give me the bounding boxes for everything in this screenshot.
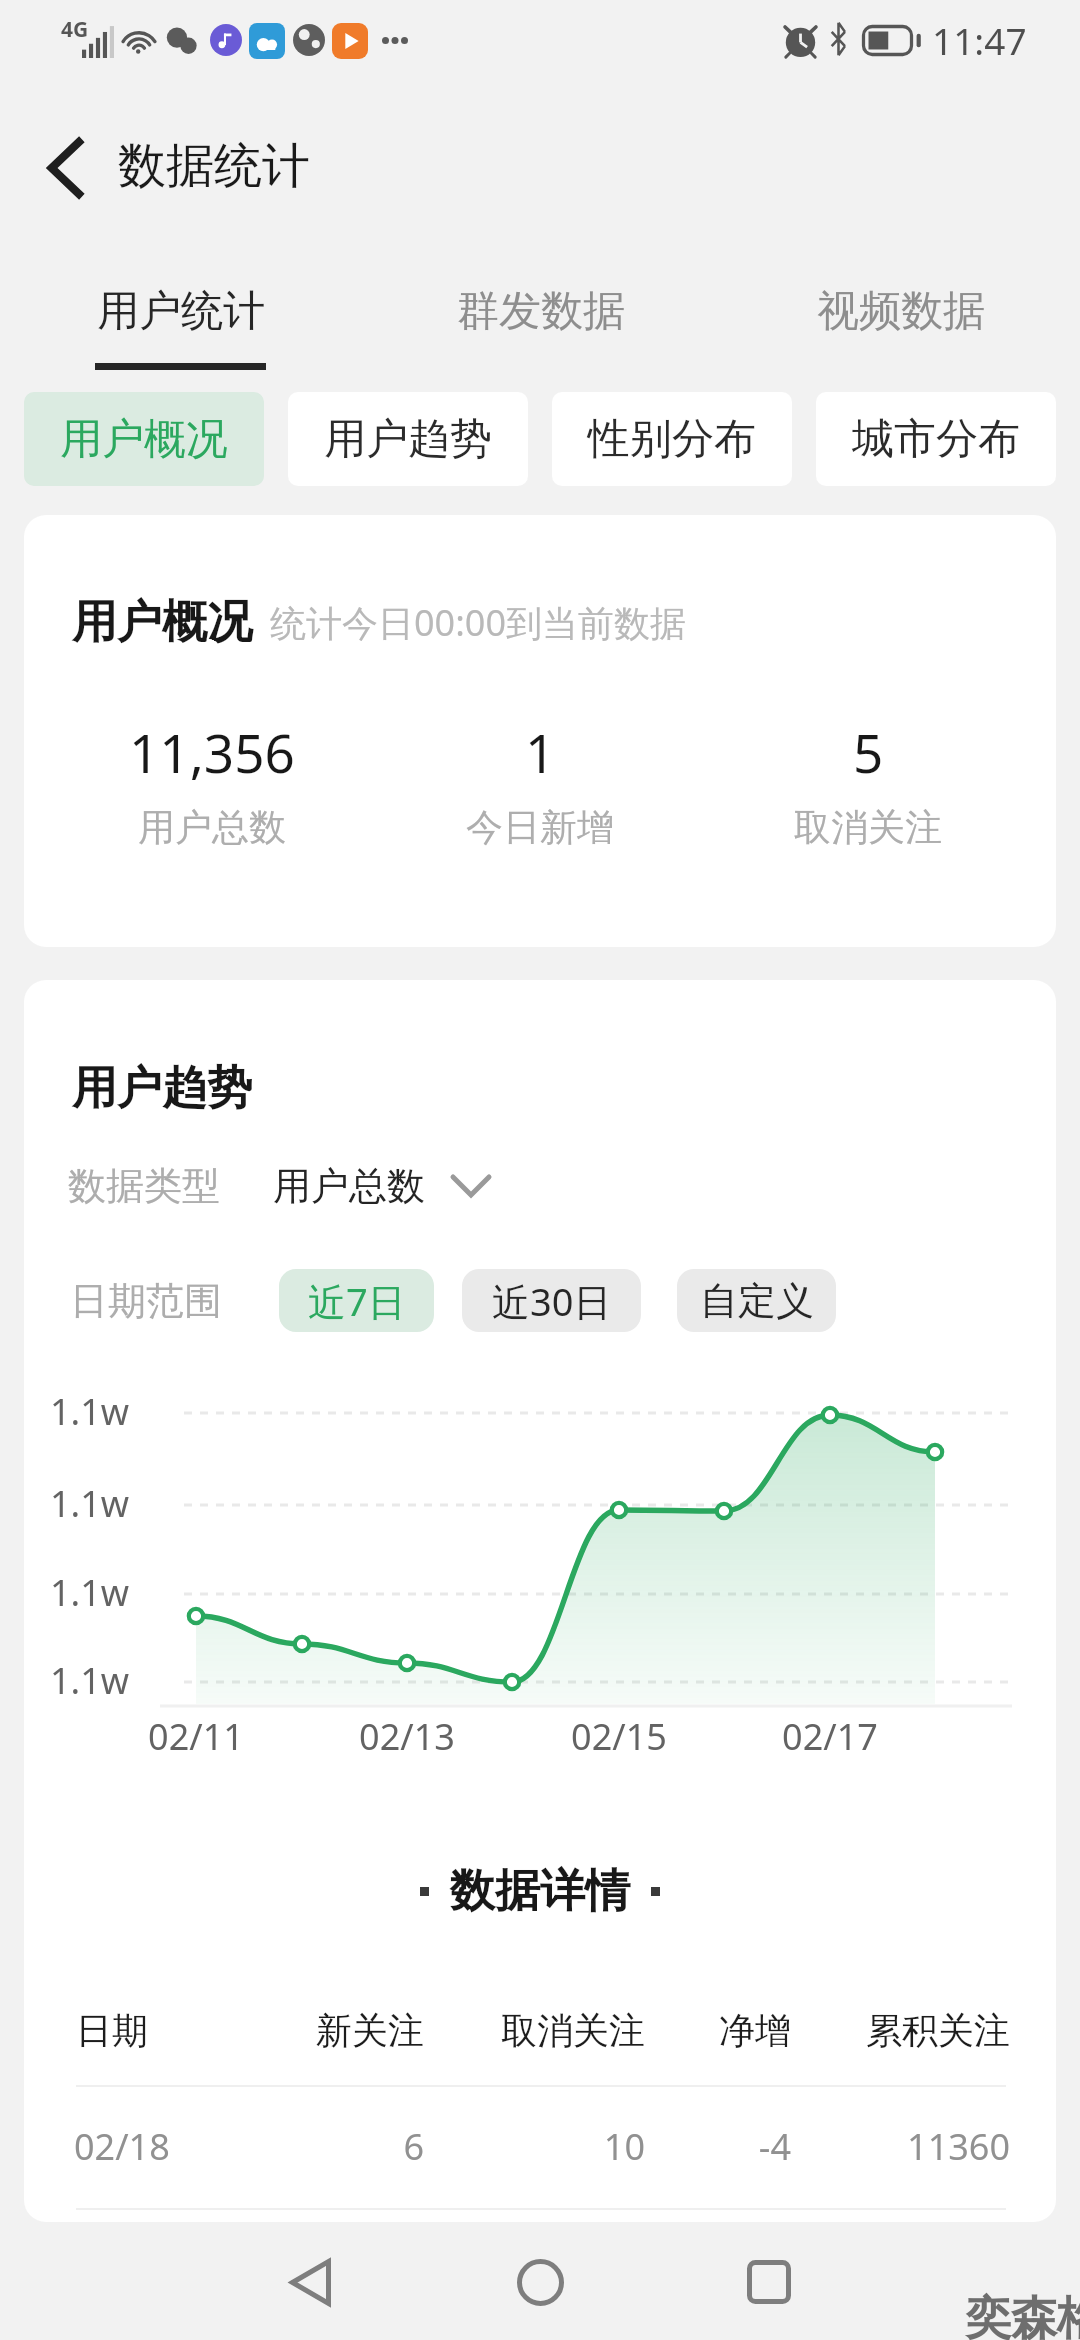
staticText: 取消关注 [794, 804, 942, 851]
staticText: 用户趋势 [324, 413, 492, 466]
staticText: 近7日 [308, 1275, 406, 1327]
staticText: 1.1w [50, 1656, 130, 1705]
staticText: 02/18 [74, 2122, 170, 2171]
staticText: 自定义 [700, 1277, 814, 1325]
staticText: 02/15 [549, 1712, 689, 1761]
button[interactable]: Home [490, 2232, 590, 2332]
staticText: 用户总数 [138, 804, 286, 851]
button[interactable]: 用户总数 [273, 1162, 491, 1210]
button[interactable]: 用户统计 [0, 244, 360, 384]
staticText: 城市分布 [852, 413, 1020, 466]
staticText: 1 [525, 716, 556, 788]
staticText: 用户总数 [273, 1162, 425, 1210]
staticText: 日期范围 [70, 1277, 222, 1325]
staticText: 视频数据 [817, 285, 985, 338]
staticText: 群发数据 [457, 285, 625, 338]
staticText: 数据详情 [450, 1863, 630, 1920]
staticText: 今日新增 [466, 804, 614, 851]
staticText: 奕森格 [965, 2290, 1080, 2340]
button[interactable]: 性别分布 [552, 392, 792, 486]
staticText: 1.1w [50, 1387, 130, 1436]
button[interactable]: Back [26, 128, 106, 208]
button[interactable]: 自定义 [677, 1269, 836, 1332]
staticText: 02/17 [760, 1712, 900, 1761]
staticText: 4G [61, 15, 89, 44]
staticText: 1.1w [50, 1479, 130, 1528]
staticText: 用户概况 [72, 594, 252, 651]
staticText: 日期 [76, 2008, 148, 2053]
staticText: -4 [531, 2122, 791, 2171]
staticText: 数据类型 [68, 1162, 220, 1210]
staticText: 新关注 [164, 2008, 424, 2053]
staticText: 10 [385, 2122, 645, 2171]
staticText: 取消关注 [385, 2008, 645, 2053]
staticText: 性别分布 [588, 413, 756, 466]
button[interactable]: 用户概况 [24, 392, 264, 486]
button[interactable]: 用户趋势 [288, 392, 528, 486]
button[interactable]: 城市分布 [816, 392, 1056, 486]
staticText: 02/13 [337, 1712, 477, 1761]
staticText: 用户统计 [97, 285, 265, 338]
button[interactable]: Recents [719, 2232, 819, 2332]
staticText: 用户概况 [60, 413, 228, 466]
staticText: 数据统计 [118, 136, 310, 196]
staticText: 11:47 [932, 15, 1027, 65]
button[interactable]: 视频数据 [720, 244, 1080, 384]
staticText: 1.1w [50, 1568, 130, 1617]
button[interactable]: 近30日 [462, 1269, 641, 1332]
staticText: 11360 [750, 2122, 1010, 2171]
staticText: 累积关注 [750, 2008, 1010, 2053]
button[interactable]: 群发数据 [360, 244, 720, 384]
staticText: 02/11 [126, 1712, 266, 1761]
button[interactable]: Back [260, 2232, 360, 2332]
staticText: 近30日 [492, 1275, 612, 1327]
staticText: 11,356 [129, 716, 295, 788]
staticText: 用户趋势 [72, 1060, 252, 1117]
staticText: 净增 [531, 2008, 791, 2053]
staticText: 5 [853, 716, 884, 788]
button[interactable]: 近7日 [279, 1269, 434, 1332]
staticText: 统计今日00:00到当前数据 [270, 598, 687, 647]
staticText: 6 [164, 2122, 424, 2171]
